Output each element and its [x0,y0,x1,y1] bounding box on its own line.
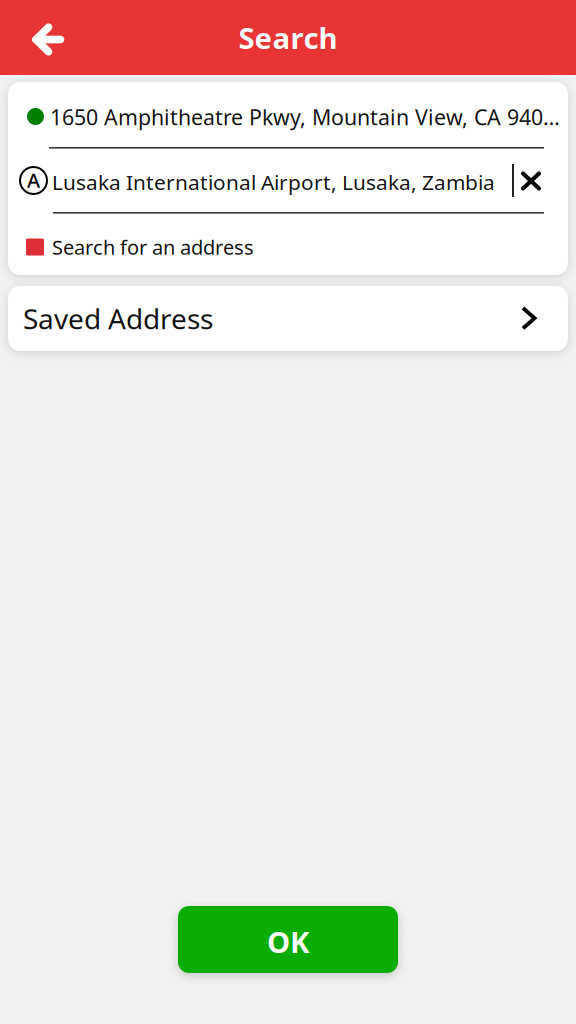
button[interactable]: Destination address [8,167,568,214]
button[interactable]: Search for an address [26,226,356,268]
button[interactable]: Origin address [8,82,568,152]
staticText: A [27,167,40,193]
staticText: 1650 Amphitheatre Pkwy, Mountain View, C… [50,103,569,131]
button[interactable]: Clear text [511,159,551,203]
staticText: Saved Address [23,300,213,337]
button[interactable]: Back [0,0,96,75]
button[interactable]: OK [178,906,398,973]
staticText: Search for an address [52,234,254,260]
staticText: Search [238,18,337,57]
staticText: OK [267,922,309,961]
staticText: Lusaka International Airport, Lusaka, Za… [52,168,495,196]
button[interactable]: Saved Address [8,286,568,351]
